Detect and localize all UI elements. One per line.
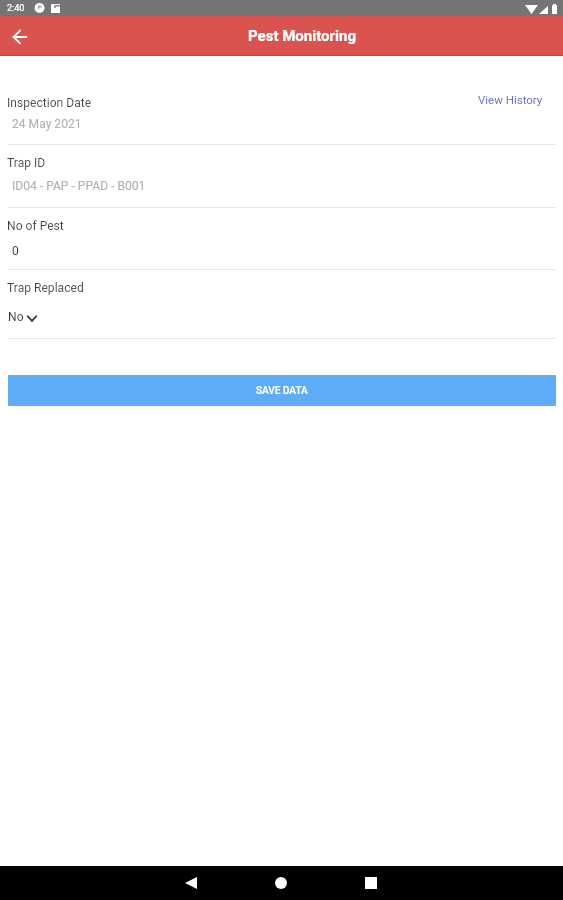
staticText: ID04 - PAP - PPAD - B001: [12, 179, 146, 193]
button[interactable]: Home: [256, 866, 306, 900]
button[interactable]: SAVE DATA: [8, 375, 556, 406]
staticText: 0: [12, 244, 19, 258]
button[interactable]: Recent apps: [346, 866, 396, 900]
button[interactable]: ID04 - PAP - PPAD - B001: [0, 176, 563, 196]
button[interactable]: View History: [476, 91, 545, 108]
button[interactable]: 0: [0, 241, 563, 261]
staticText: SAVE DATA: [256, 385, 308, 397]
staticText: View History: [478, 93, 543, 106]
button[interactable]: 24 May 2021: [0, 114, 563, 134]
staticText: Inspection Date: [7, 96, 92, 110]
staticText: Pest Monitoring: [248, 27, 356, 45]
staticText: Trap Replaced: [7, 281, 84, 295]
staticText: 2:40: [7, 3, 25, 14]
staticText: No of Pest: [7, 219, 64, 233]
staticText: Trap ID: [7, 156, 46, 170]
button[interactable]: Back: [166, 866, 216, 900]
button[interactable]: No: [0, 307, 563, 327]
button[interactable]: Back: [0, 16, 40, 56]
staticText: 24 May 2021: [12, 117, 82, 131]
staticText: No: [8, 310, 24, 324]
